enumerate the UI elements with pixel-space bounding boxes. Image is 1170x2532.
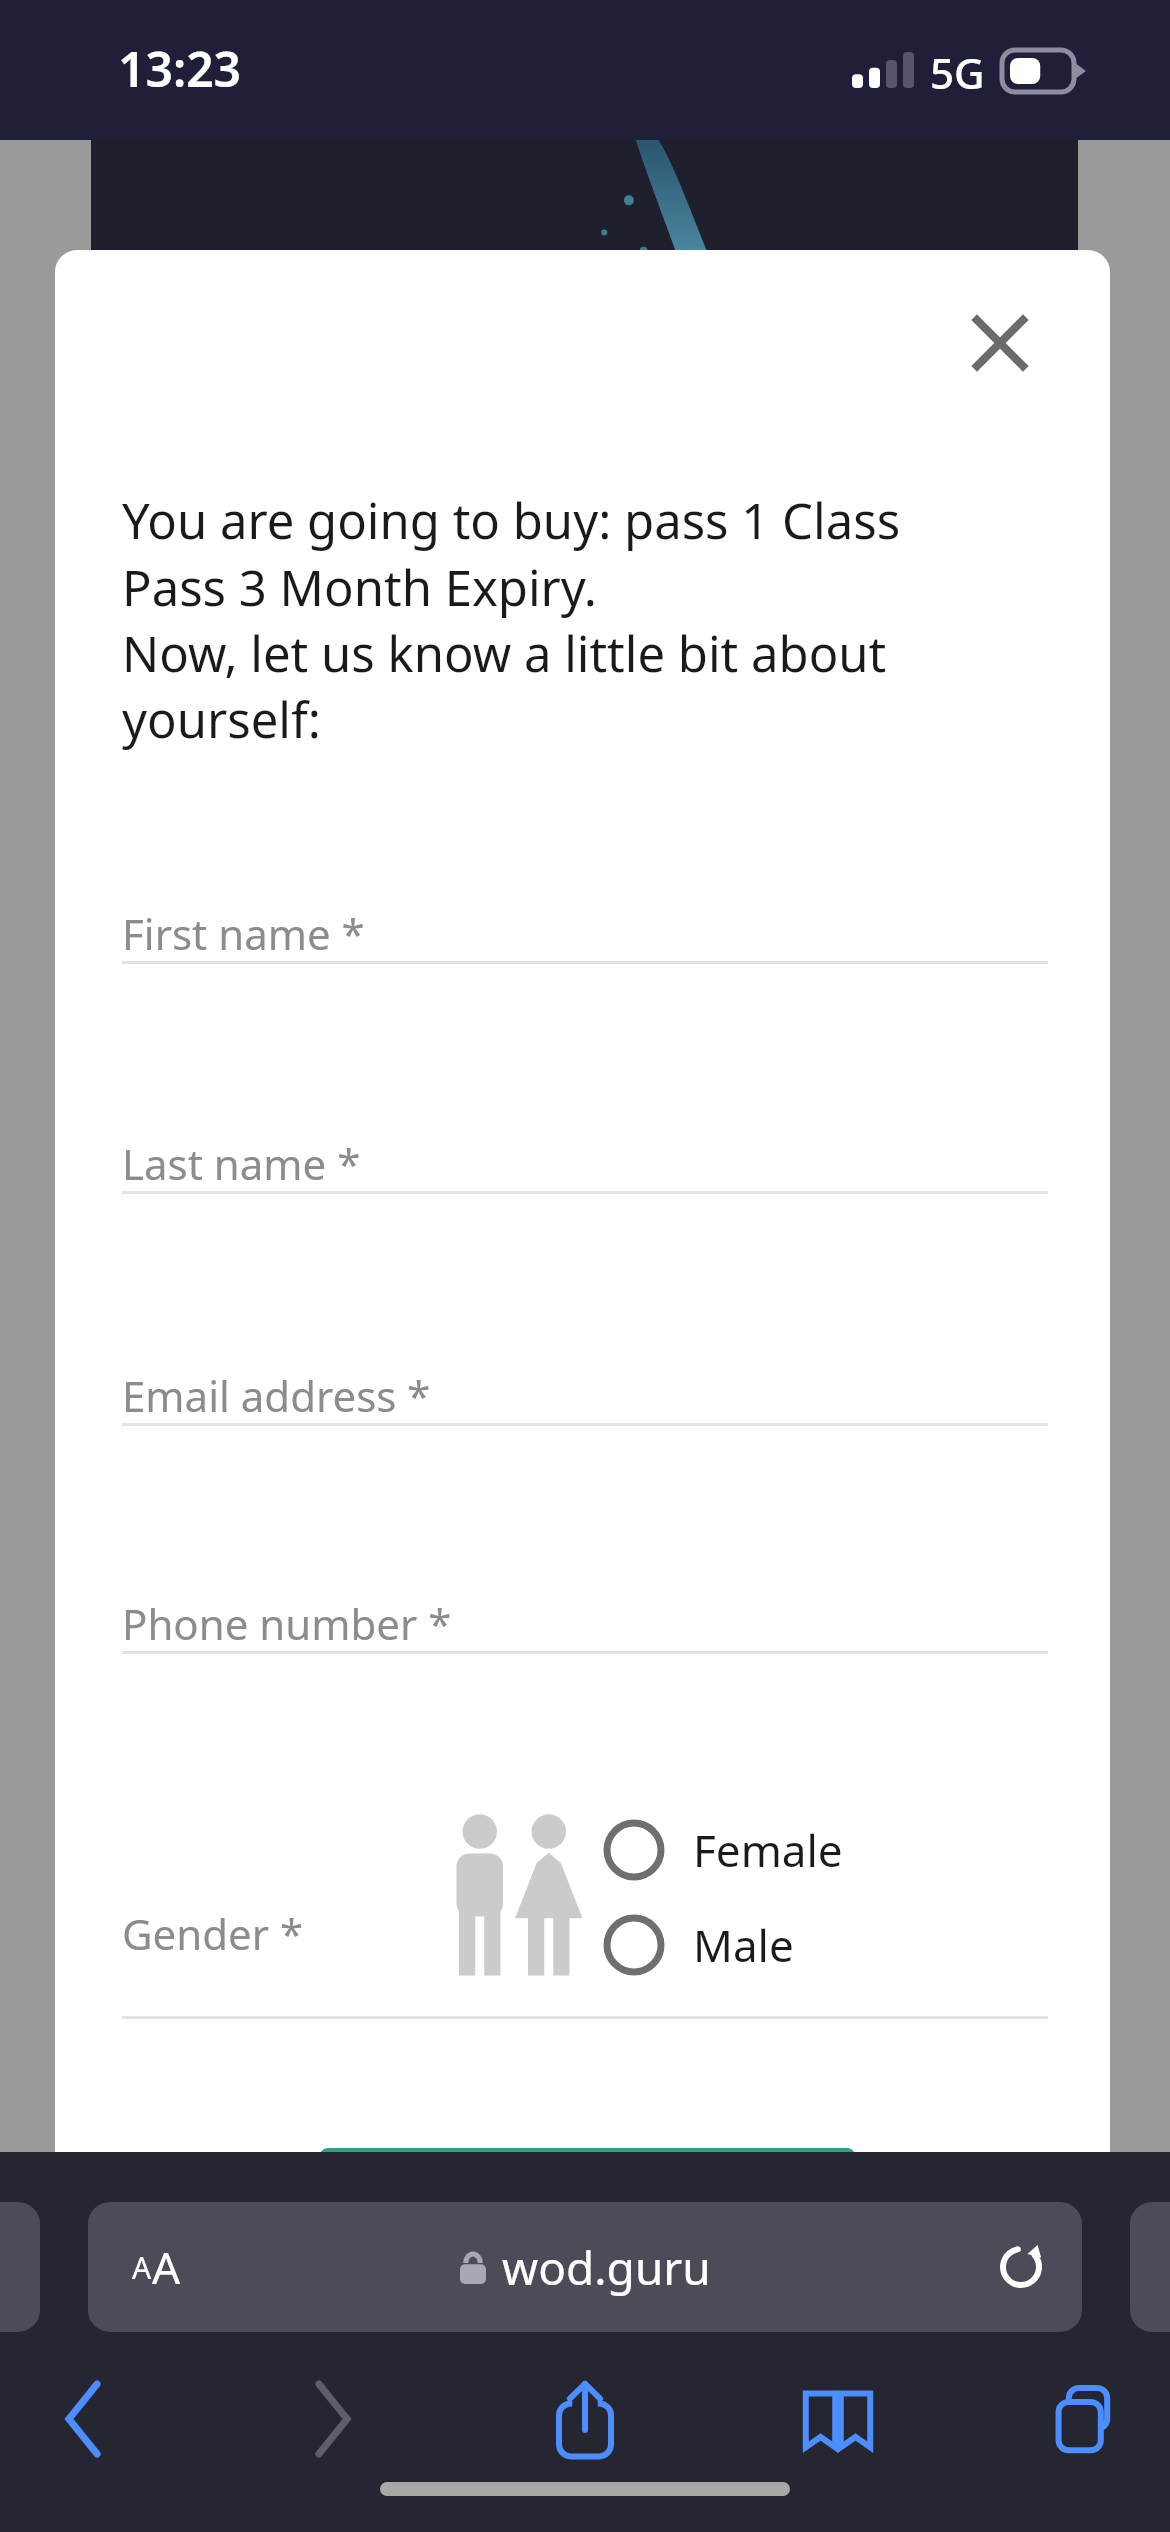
staticText: 13:23 <box>118 36 242 101</box>
staticText: Male <box>693 1915 794 1975</box>
staticText: 5G <box>930 44 985 101</box>
button[interactable]: Reload <box>966 2202 1076 2332</box>
staticText: Last name * <box>122 1135 361 1192</box>
staticText: Gender * <box>122 1905 304 1962</box>
button[interactable]: Share <box>530 2364 640 2474</box>
staticText: You are going to buy: pass 1 Class Pass … <box>122 487 1002 752</box>
staticText: Female <box>693 1820 843 1880</box>
button[interactable]: Back <box>28 2364 138 2474</box>
other: Text size <box>132 2202 181 2332</box>
button[interactable]: Male <box>603 1905 1023 1985</box>
button[interactable]: Phone number * <box>122 1595 1048 1735</box>
button[interactable]: Text size <box>88 2202 1082 2332</box>
button[interactable] <box>320 2148 855 2152</box>
button[interactable]: First name * <box>122 905 1048 1045</box>
button[interactable]: Forward <box>278 2364 388 2474</box>
staticText: A <box>132 2247 152 2288</box>
button[interactable]: Female <box>603 1810 1023 1890</box>
button[interactable]: Close <box>957 300 1043 386</box>
staticText: A <box>152 2237 181 2297</box>
button[interactable]: Bookmarks <box>783 2364 893 2474</box>
staticText: Phone number * <box>122 1595 452 1652</box>
staticText: Email address * <box>122 1367 431 1424</box>
staticText: wod.guru <box>502 2236 711 2299</box>
button[interactable]: Last name * <box>122 1135 1048 1275</box>
button[interactable]: Email address * <box>122 1367 1048 1507</box>
button[interactable]: Tabs <box>1033 2364 1143 2474</box>
staticText: First name * <box>122 905 365 962</box>
